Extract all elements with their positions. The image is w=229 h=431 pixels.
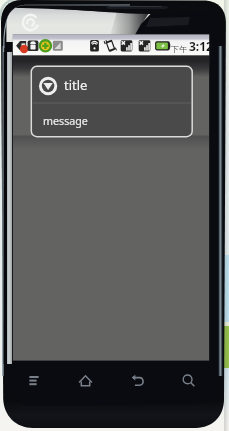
staticText: 下午 [171, 44, 187, 54]
staticText: title [64, 76, 88, 94]
staticText: message [43, 114, 88, 129]
button[interactable]: Back [115, 364, 161, 398]
button[interactable]: title [31, 66, 194, 104]
button[interactable]: Search [166, 364, 210, 398]
button[interactable]: message [31, 103, 194, 138]
button[interactable]: Home [63, 364, 109, 398]
button[interactable]: Menu [13, 364, 61, 398]
staticText: 3:12 [189, 38, 213, 54]
